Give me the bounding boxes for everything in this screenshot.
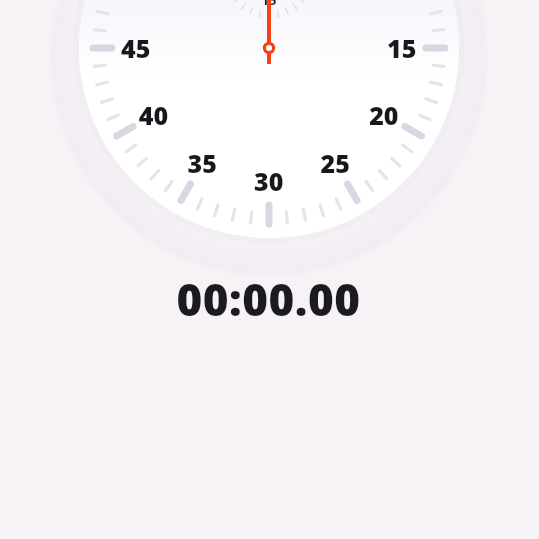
button[interactable]: Stopwatch	[0, 0, 539, 539]
